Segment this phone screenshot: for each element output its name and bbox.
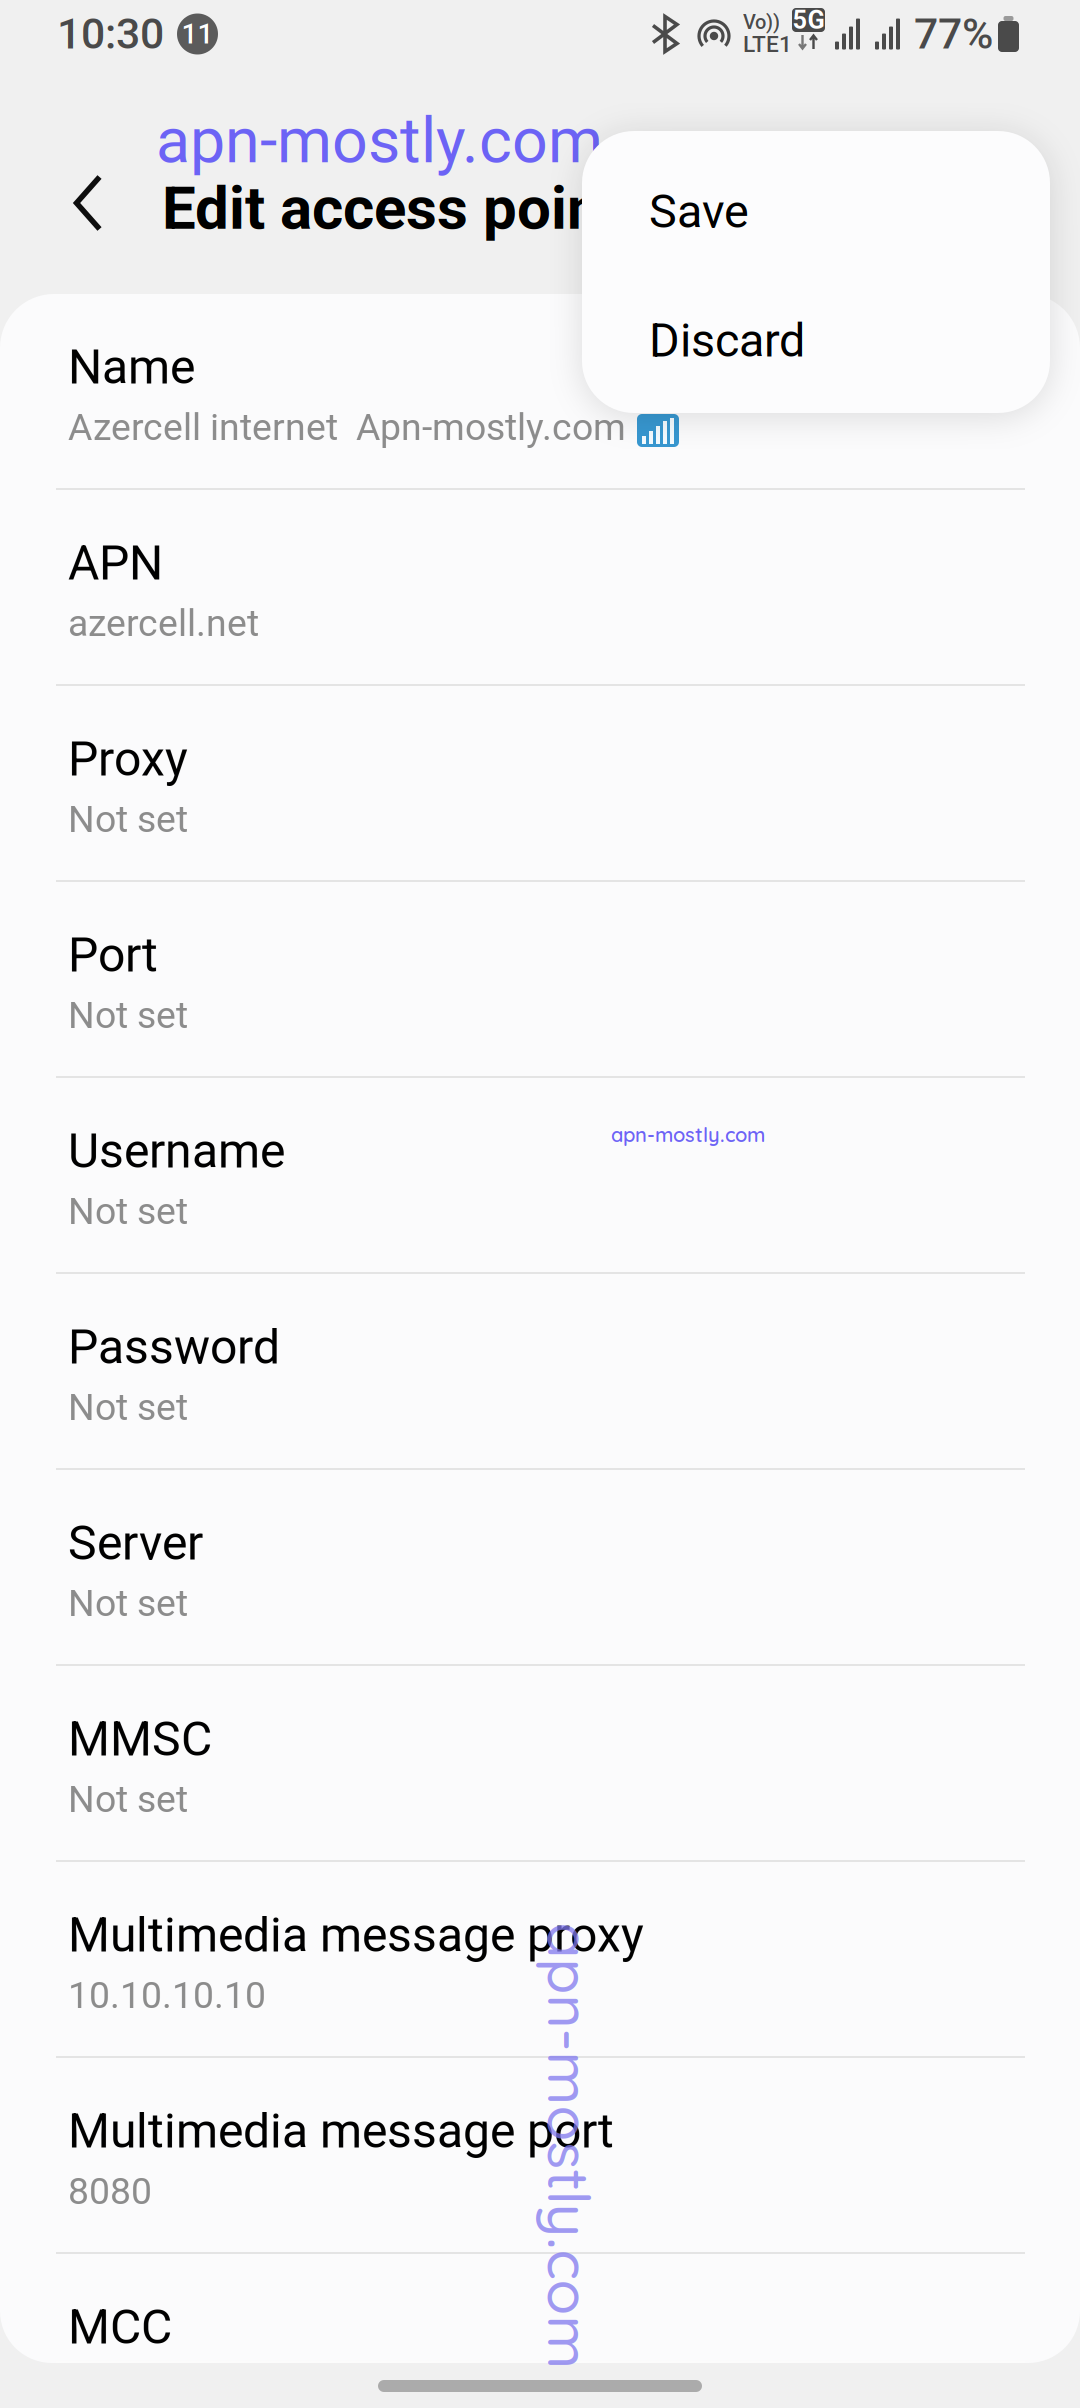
staticText: Multimedia message port (68, 2103, 614, 2159)
button[interactable]: APN (0, 490, 1080, 686)
staticText: apn-mostly.com (346, 2109, 793, 2183)
button[interactable]: Server (0, 1470, 1080, 1666)
staticText: 10:30 (57, 9, 164, 59)
staticText: 5G (792, 5, 824, 35)
button[interactable]: Username (0, 1078, 1080, 1274)
staticText: Server (68, 1515, 203, 1571)
staticText: Proxy (68, 731, 188, 787)
button[interactable]: Proxy (0, 686, 1080, 882)
staticText: Edit access point (162, 173, 621, 243)
staticText: Not set (68, 993, 188, 1037)
staticText: Not set (68, 1777, 188, 1821)
button[interactable]: Password (0, 1274, 1080, 1470)
staticText: Not set (68, 1385, 188, 1429)
staticText: 8080 (68, 2169, 152, 2213)
button[interactable]: Multimedia message proxy (0, 1862, 1080, 2058)
staticText: Azercell internet Apn-mostly.com (68, 405, 626, 449)
button[interactable]: Save (582, 147, 1050, 276)
staticText: Port (68, 927, 158, 983)
staticText: Vo)) (743, 10, 780, 34)
button[interactable]: Multimedia message port (0, 2058, 1080, 2254)
staticText: Multimedia message proxy (68, 1907, 644, 1963)
staticText: Name (68, 339, 195, 395)
staticText: Save (649, 184, 749, 239)
staticText: Password (68, 1319, 280, 1375)
staticText: Discard (649, 313, 805, 368)
staticText: 10.10.10.10 (68, 1973, 266, 2017)
staticText: APN (68, 535, 163, 591)
staticText: 77% (914, 9, 993, 59)
staticText: apn-mostly.com (611, 1122, 765, 1147)
staticText: MCC (68, 2299, 172, 2355)
button[interactable]: MMSC (0, 1666, 1080, 1862)
button[interactable]: Name (0, 294, 1080, 490)
staticText: Username (68, 1123, 285, 1179)
staticText: LTE1 (743, 31, 792, 57)
staticText: Not set (68, 1189, 188, 1233)
button[interactable]: Back (30, 147, 146, 259)
staticText: 11 (181, 18, 213, 50)
staticText: apn-mostly.com (156, 104, 603, 177)
staticText: Not set (68, 797, 188, 841)
staticText: Not set (68, 1581, 188, 1625)
button[interactable]: Port (0, 882, 1080, 1078)
button[interactable]: Discard (582, 276, 1050, 405)
staticText: azercell.net (68, 601, 259, 645)
button[interactable]: MCC (0, 2254, 1080, 2363)
staticText: MMSC (68, 1711, 212, 1767)
